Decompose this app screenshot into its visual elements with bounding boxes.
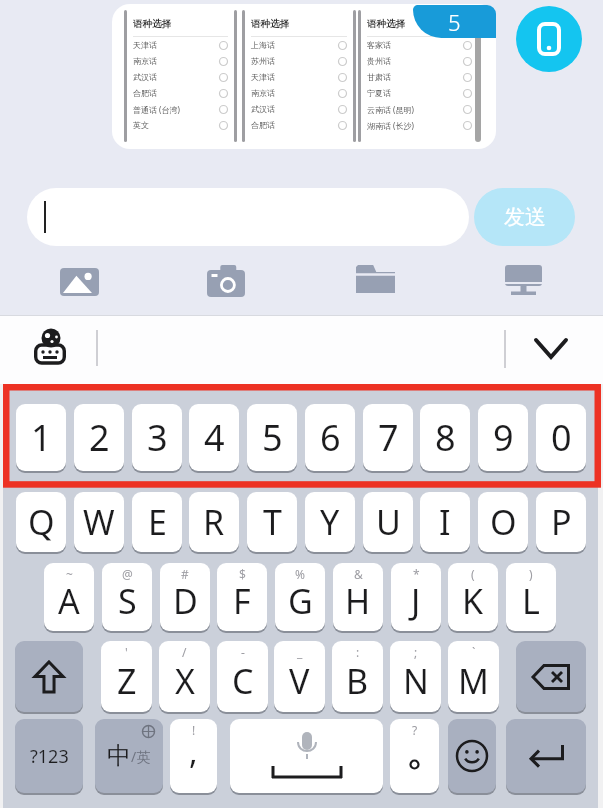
button[interactable]: 中 bbox=[95, 719, 163, 793]
button[interactable]: ) bbox=[506, 563, 556, 631]
staticText: ; bbox=[414, 644, 418, 660]
button[interactable]: ' bbox=[101, 641, 152, 712]
button[interactable]: P bbox=[536, 492, 586, 552]
button[interactable]: 英文 bbox=[133, 117, 228, 133]
button[interactable] bbox=[516, 641, 586, 712]
button[interactable]: ? bbox=[390, 719, 439, 793]
button[interactable]: ! bbox=[170, 719, 217, 793]
button[interactable]: 4 bbox=[189, 404, 239, 471]
staticText: J bbox=[411, 578, 421, 624]
button[interactable]: 7 bbox=[363, 404, 413, 471]
button[interactable]: 3 bbox=[132, 404, 182, 471]
button[interactable]: 武汉话 bbox=[133, 69, 228, 85]
staticText: 普通话 (台湾) bbox=[133, 104, 180, 115]
button[interactable]: ( bbox=[448, 563, 498, 631]
button[interactable]: 苏州话 bbox=[251, 53, 347, 69]
staticText: E bbox=[148, 499, 167, 545]
button[interactable]: ?123 bbox=[15, 719, 83, 793]
button[interactable]: W bbox=[74, 492, 124, 552]
button[interactable]: : bbox=[332, 641, 383, 712]
button[interactable]: T bbox=[247, 492, 297, 552]
staticText: 武汉话 bbox=[251, 104, 275, 114]
button[interactable]: 贵州话 bbox=[367, 53, 472, 69]
button[interactable]: 宁夏话 bbox=[367, 85, 472, 101]
button[interactable]: _ bbox=[274, 641, 325, 712]
staticText: X bbox=[175, 658, 195, 704]
staticText: $ bbox=[239, 566, 246, 582]
button[interactable]: * bbox=[391, 563, 441, 631]
button[interactable]: 客家话 bbox=[367, 37, 472, 53]
button[interactable]: 普通话 (台湾) bbox=[133, 101, 228, 117]
button[interactable] bbox=[230, 719, 383, 793]
staticText: 语种选择 bbox=[251, 18, 289, 30]
button[interactable]: 湖南话 (长沙) bbox=[367, 117, 472, 133]
button[interactable] bbox=[27, 188, 469, 246]
button[interactable]: 上海话 bbox=[251, 37, 347, 53]
staticText: 英文 bbox=[133, 120, 149, 130]
button[interactable] bbox=[207, 265, 245, 297]
button[interactable]: I bbox=[420, 492, 470, 552]
button[interactable]: ; bbox=[390, 641, 441, 712]
button[interactable]: 天津话 bbox=[251, 69, 347, 85]
button[interactable]: @ bbox=[102, 563, 152, 631]
button[interactable]: 天津话 bbox=[133, 37, 228, 53]
button[interactable]: $ bbox=[217, 563, 267, 631]
staticText: 合肥话 bbox=[251, 120, 275, 130]
staticText: F bbox=[233, 578, 251, 624]
button[interactable]: 合肥话 bbox=[133, 85, 228, 101]
button[interactable]: Y bbox=[305, 492, 355, 552]
staticText: # bbox=[181, 566, 189, 582]
button[interactable]: 南京话 bbox=[133, 53, 228, 69]
staticText: I bbox=[439, 499, 451, 545]
button[interactable] bbox=[60, 268, 99, 296]
staticText: R bbox=[203, 499, 225, 545]
button[interactable]: 1 bbox=[16, 404, 66, 471]
button[interactable]: 5 bbox=[413, 5, 496, 38]
button[interactable]: ~ bbox=[44, 563, 94, 631]
staticText: U bbox=[376, 499, 401, 545]
button[interactable] bbox=[34, 328, 66, 364]
button[interactable]: E bbox=[132, 492, 182, 552]
button[interactable]: 南京话 bbox=[251, 85, 347, 101]
button[interactable]: 9 bbox=[478, 404, 528, 471]
button[interactable]: 2 bbox=[74, 404, 124, 471]
button[interactable]: ` bbox=[448, 641, 499, 712]
button[interactable] bbox=[536, 340, 566, 357]
button[interactable]: # bbox=[160, 563, 210, 631]
button[interactable]: Q bbox=[16, 492, 66, 552]
staticText: 9 bbox=[493, 413, 514, 462]
button[interactable] bbox=[15, 641, 83, 712]
button[interactable] bbox=[516, 6, 582, 72]
button[interactable]: 武汉话 bbox=[251, 101, 347, 117]
button[interactable]: 0 bbox=[536, 404, 586, 471]
button[interactable] bbox=[506, 719, 586, 793]
button[interactable] bbox=[356, 265, 395, 295]
button[interactable] bbox=[505, 265, 542, 295]
staticText: ? bbox=[412, 722, 418, 738]
staticText: 6 bbox=[320, 413, 341, 462]
button[interactable]: 合肥话 bbox=[251, 117, 347, 133]
staticText: 南京话 bbox=[133, 56, 157, 66]
button[interactable]: R bbox=[189, 492, 239, 552]
button[interactable]: % bbox=[275, 563, 325, 631]
button[interactable]: - bbox=[217, 641, 268, 712]
staticText: 中 bbox=[107, 741, 131, 771]
button[interactable]: 云南话 (昆明) bbox=[367, 101, 472, 117]
staticText: Q bbox=[28, 499, 55, 545]
button[interactable]: 6 bbox=[305, 404, 355, 471]
staticText: C bbox=[232, 658, 254, 704]
button[interactable]: U bbox=[363, 492, 413, 552]
button[interactable]: O bbox=[478, 492, 528, 552]
button[interactable]: 5 bbox=[247, 404, 297, 471]
staticText: : bbox=[356, 644, 360, 660]
staticText: V bbox=[289, 658, 310, 704]
button[interactable]: & bbox=[333, 563, 383, 631]
button[interactable]: 发送 bbox=[474, 188, 575, 246]
button[interactable]: 甘肃话 bbox=[367, 69, 472, 85]
button[interactable] bbox=[448, 719, 496, 793]
staticText: M bbox=[458, 658, 489, 704]
button[interactable]: / bbox=[159, 641, 210, 712]
button[interactable]: 8 bbox=[420, 404, 470, 471]
staticText: 宁夏话 bbox=[367, 88, 391, 98]
staticText: 武汉话 bbox=[133, 72, 157, 82]
